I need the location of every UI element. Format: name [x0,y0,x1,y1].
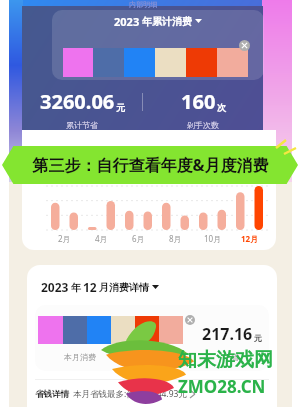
staticText: 月消费详情 [99,281,149,294]
staticText: 160 [181,88,216,115]
staticText: 2023 [41,279,69,295]
staticText: 12月 [241,233,259,244]
button[interactable]: 2023 [52,10,264,80]
staticText: 次 [217,102,226,113]
staticText: 知末游戏网 [178,348,273,372]
staticText: 本月消费 [64,352,96,362]
staticText: 第三步：自行查看年度&月度消费 [32,154,269,176]
staticText: 年累计消费 [142,15,192,28]
staticText: 3260.06 [40,88,115,115]
staticText: 4月 [95,233,108,244]
staticText: 元 [254,333,262,343]
staticText: 省 [231,352,239,362]
staticText: 217.16 [202,323,253,345]
staticText: 省钱详情 [35,389,69,400]
staticText: 8月 [169,233,182,244]
staticText: 2月 [58,233,71,244]
staticText: 6月 [132,233,145,244]
button[interactable]: Close [185,315,195,325]
staticText: 12 [83,279,97,295]
staticText: 数 [170,352,178,362]
button[interactable]: 2023 [41,277,159,297]
staticText: 2023 [114,14,140,29]
staticText: 剁手次数 [187,120,219,130]
staticText: 内部明细 [129,0,157,8]
button[interactable]: Close [239,40,250,51]
staticText: 10月 [204,233,222,244]
button[interactable]: 省钱详情 [35,384,269,404]
staticText: 累计节省 [66,120,98,130]
staticText: 元 [116,102,125,113]
staticText: 本月省钱最多:优惠券144.93元 [73,388,187,400]
staticText: ZMO28.CN [178,375,266,398]
staticText: 年 [71,281,81,294]
